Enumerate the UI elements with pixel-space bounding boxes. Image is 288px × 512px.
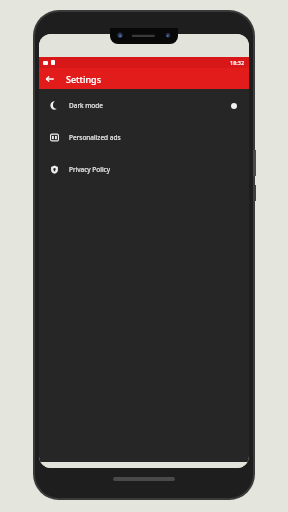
staticText: Privacy Policy	[69, 165, 111, 174]
button[interactable]: Back	[39, 68, 60, 89]
staticText: 18:32	[230, 59, 245, 66]
button[interactable]: Privacy Policy	[39, 160, 249, 178]
staticText: Personalized ads	[69, 133, 121, 142]
staticText: Dark mode	[69, 101, 103, 110]
button[interactable]: Dark mode toggle	[228, 100, 239, 111]
button[interactable]: Dark mode	[39, 96, 249, 114]
button[interactable]: Personalized ads	[39, 128, 249, 146]
staticText: Settings	[66, 73, 102, 85]
